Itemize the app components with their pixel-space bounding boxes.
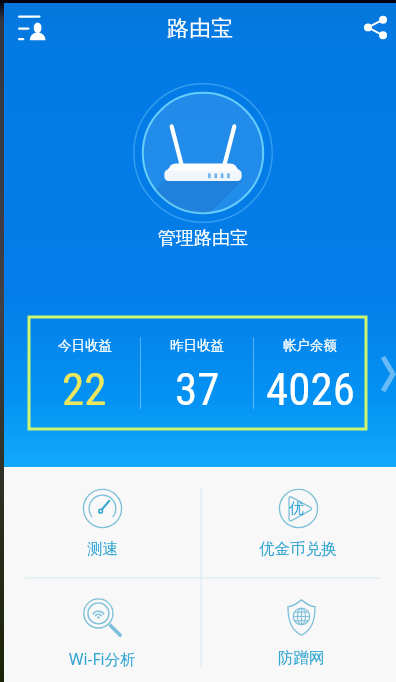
button[interactable] (133, 83, 273, 223)
staticText: 路由宝 (167, 15, 233, 43)
button[interactable]: Wi-Fi分析 (4, 583, 200, 682)
staticText: 昨日收益 (170, 337, 224, 354)
button[interactable]: Menu (6, 3, 54, 51)
staticText: 37 (175, 363, 220, 416)
staticText: 今日收益 (58, 337, 112, 354)
staticText: 管理路由宝 (158, 227, 248, 250)
button[interactable]: 优 (200, 467, 396, 579)
button[interactable]: 测速 (4, 467, 200, 579)
button[interactable]: Share (348, 3, 396, 51)
staticText: Wi-Fi分析 (69, 648, 136, 669)
staticText: 优金币兑换 (259, 539, 337, 559)
staticText: 测速 (87, 539, 118, 559)
staticText: 防蹭网 (278, 648, 325, 668)
staticText: 4026 (266, 363, 355, 416)
staticText: 帐户余额 (283, 337, 337, 354)
button[interactable]: 今日收益 (29, 317, 366, 429)
staticText: 22 (62, 363, 107, 416)
staticText: 优 (289, 499, 304, 518)
button[interactable]: 防蹭网 (203, 583, 396, 682)
